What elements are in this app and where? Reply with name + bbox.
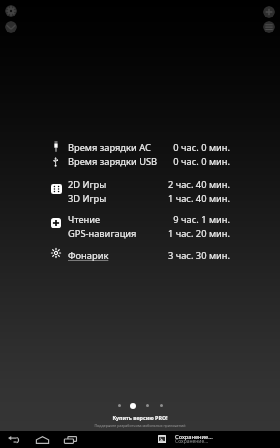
staticText: Чтение bbox=[68, 213, 101, 226]
staticText: Время зарядки USB bbox=[68, 155, 158, 168]
staticText: 0 час. 0 мин. bbox=[173, 141, 230, 154]
button[interactable]: Время зарядки USB bbox=[0, 154, 280, 168]
button[interactable]: Recent apps bbox=[58, 431, 82, 448]
button[interactable]: Время зарядки AC bbox=[0, 140, 280, 154]
staticText: Поддержите разработчика мобильных прилож… bbox=[94, 423, 186, 428]
button[interactable]: Page 4 bbox=[154, 399, 168, 412]
staticText: 0 час. 0 мин. bbox=[173, 155, 230, 168]
button[interactable]: Сохранение... bbox=[150, 431, 280, 448]
button[interactable]: Menu bbox=[263, 21, 275, 33]
staticText: 2D Игры bbox=[68, 178, 107, 191]
staticText: 1 час. 20 мин. bbox=[167, 227, 230, 240]
button[interactable]: Чтение bbox=[0, 212, 280, 226]
staticText: Купить версию PRO! bbox=[112, 414, 168, 421]
button[interactable]: Фонарик bbox=[0, 248, 280, 262]
button[interactable]: GPS-навигация bbox=[0, 226, 280, 240]
staticText: Фонарик bbox=[68, 249, 109, 262]
staticText: 9 час. 1 мин. bbox=[173, 213, 230, 226]
staticText: 3 час. 30 мин. bbox=[167, 249, 230, 262]
staticText: GPS-навигация bbox=[68, 227, 137, 240]
button[interactable]: Page 3 bbox=[140, 399, 154, 412]
button[interactable]: Page 1 bbox=[112, 399, 126, 412]
staticText: Время зарядки AC bbox=[68, 141, 151, 154]
button[interactable]: 2D Игры bbox=[0, 177, 280, 191]
staticText: 2 час. 40 мин. bbox=[167, 178, 230, 191]
button[interactable]: 3D Игры bbox=[0, 191, 280, 205]
button[interactable]: Settings bbox=[5, 5, 17, 17]
staticText: Сохранение... bbox=[175, 438, 209, 445]
staticText: 3D Игры bbox=[68, 192, 107, 205]
button[interactable]: Back bbox=[1, 431, 26, 448]
staticText: 1 час. 40 мин. bbox=[167, 192, 230, 205]
button[interactable]: Home bbox=[30, 431, 54, 448]
button[interactable]: Page 2 bbox=[126, 399, 140, 412]
button[interactable]: Add bbox=[263, 6, 275, 18]
button[interactable]: Statistics bbox=[5, 21, 17, 33]
button[interactable]: Купить версию PRO! bbox=[0, 414, 280, 429]
staticText: Сохранение... bbox=[175, 433, 213, 441]
